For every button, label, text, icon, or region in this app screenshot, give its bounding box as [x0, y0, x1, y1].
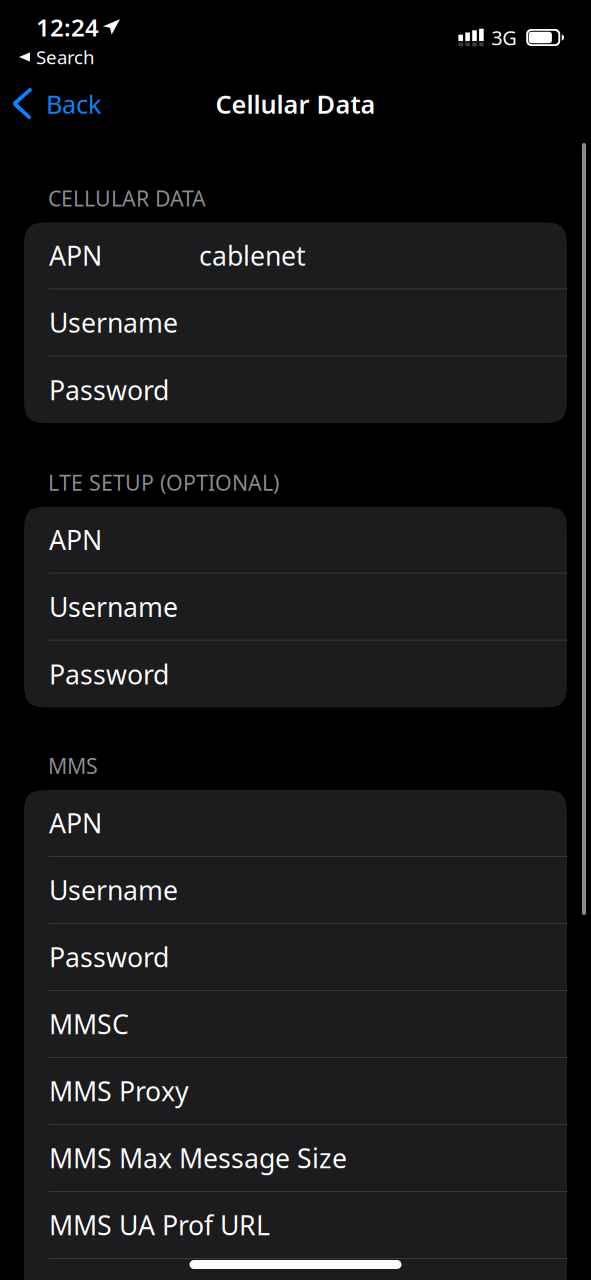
- button[interactable]: Search: [0, 48, 591, 74]
- staticText: Password: [49, 656, 169, 692]
- button[interactable]: MMSC: [24, 991, 567, 1058]
- staticText: Password: [49, 939, 169, 975]
- staticText: Username: [49, 872, 178, 908]
- button[interactable]: APN: [24, 790, 567, 857]
- staticText: Back: [46, 87, 102, 121]
- button[interactable]: Password: [24, 924, 567, 991]
- staticText: LTE SETUP (OPTIONAL): [48, 468, 279, 497]
- button[interactable]: Back: [0, 78, 112, 130]
- button[interactable]: Username: [24, 857, 567, 924]
- button[interactable]: Password: [24, 641, 567, 708]
- staticText: CELLULAR DATA: [48, 184, 206, 212]
- staticText: 3G: [491, 24, 517, 51]
- staticText: MMSC: [49, 1006, 129, 1042]
- button[interactable]: Password: [24, 356, 567, 423]
- staticText: Cellular Data: [215, 87, 375, 121]
- staticText: APN: [49, 238, 102, 273]
- button[interactable]: APN: [24, 222, 567, 289]
- staticText: cablenet: [199, 238, 306, 273]
- staticText: APN: [49, 805, 102, 841]
- staticText: Password: [49, 372, 169, 407]
- button[interactable]: MMS UA Prof URL: [24, 1259, 567, 1280]
- staticText: MMS Proxy: [49, 1073, 189, 1109]
- staticText: MMS: [48, 752, 98, 780]
- button[interactable]: APN: [24, 507, 567, 574]
- button[interactable]: Username: [24, 289, 567, 356]
- staticText: 12:24: [36, 11, 99, 43]
- button[interactable]: MMS Proxy: [24, 1058, 567, 1125]
- button[interactable]: MMS UA Prof URL: [24, 1192, 567, 1259]
- staticText: APN: [49, 522, 102, 557]
- staticText: Username: [49, 589, 178, 624]
- button[interactable]: Username: [24, 574, 567, 641]
- staticText: MMS UA Prof URL: [49, 1207, 270, 1243]
- staticText: Search: [36, 45, 95, 69]
- staticText: Username: [49, 305, 178, 340]
- staticText: MMS Max Message Size: [49, 1140, 347, 1176]
- button[interactable]: MMS Max Message Size: [24, 1125, 567, 1192]
